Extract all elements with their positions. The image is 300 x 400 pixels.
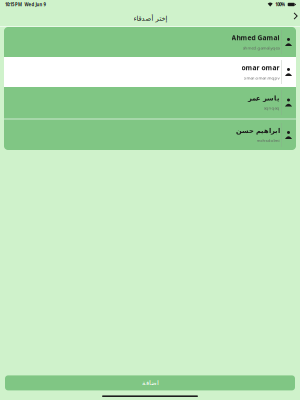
- staticText: ahmed-gamal-yqea: [242, 45, 279, 51]
- staticText: ابراهيم حسن: [235, 127, 279, 134]
- staticText: اضافة: [141, 379, 158, 387]
- button[interactable]: اضافة: [5, 375, 295, 390]
- staticText: ياسر عمر: [247, 94, 279, 102]
- staticText: Ahmed Gamal: [231, 33, 279, 42]
- staticText: mchsdolmi: [256, 137, 279, 143]
- staticText: omar-omar-mqpv: [243, 75, 279, 81]
- button[interactable]: ياسر عمر: [4, 87, 296, 118]
- staticText: 10:15 PM: [5, 2, 22, 7]
- staticText: Wed Jun 9: [24, 2, 45, 7]
- button[interactable]: omar omar: [4, 57, 296, 87]
- staticText: إختر أصدقاء: [133, 14, 167, 22]
- staticText: 100%: [275, 2, 285, 7]
- staticText: aqnqaq: [263, 105, 279, 111]
- button[interactable]: ابراهيم حسن: [4, 120, 296, 150]
- button[interactable]: Ahmed Gamal: [4, 27, 296, 57]
- button[interactable]: Next: [288, 10, 300, 25]
- staticText: omar omar: [241, 63, 279, 72]
